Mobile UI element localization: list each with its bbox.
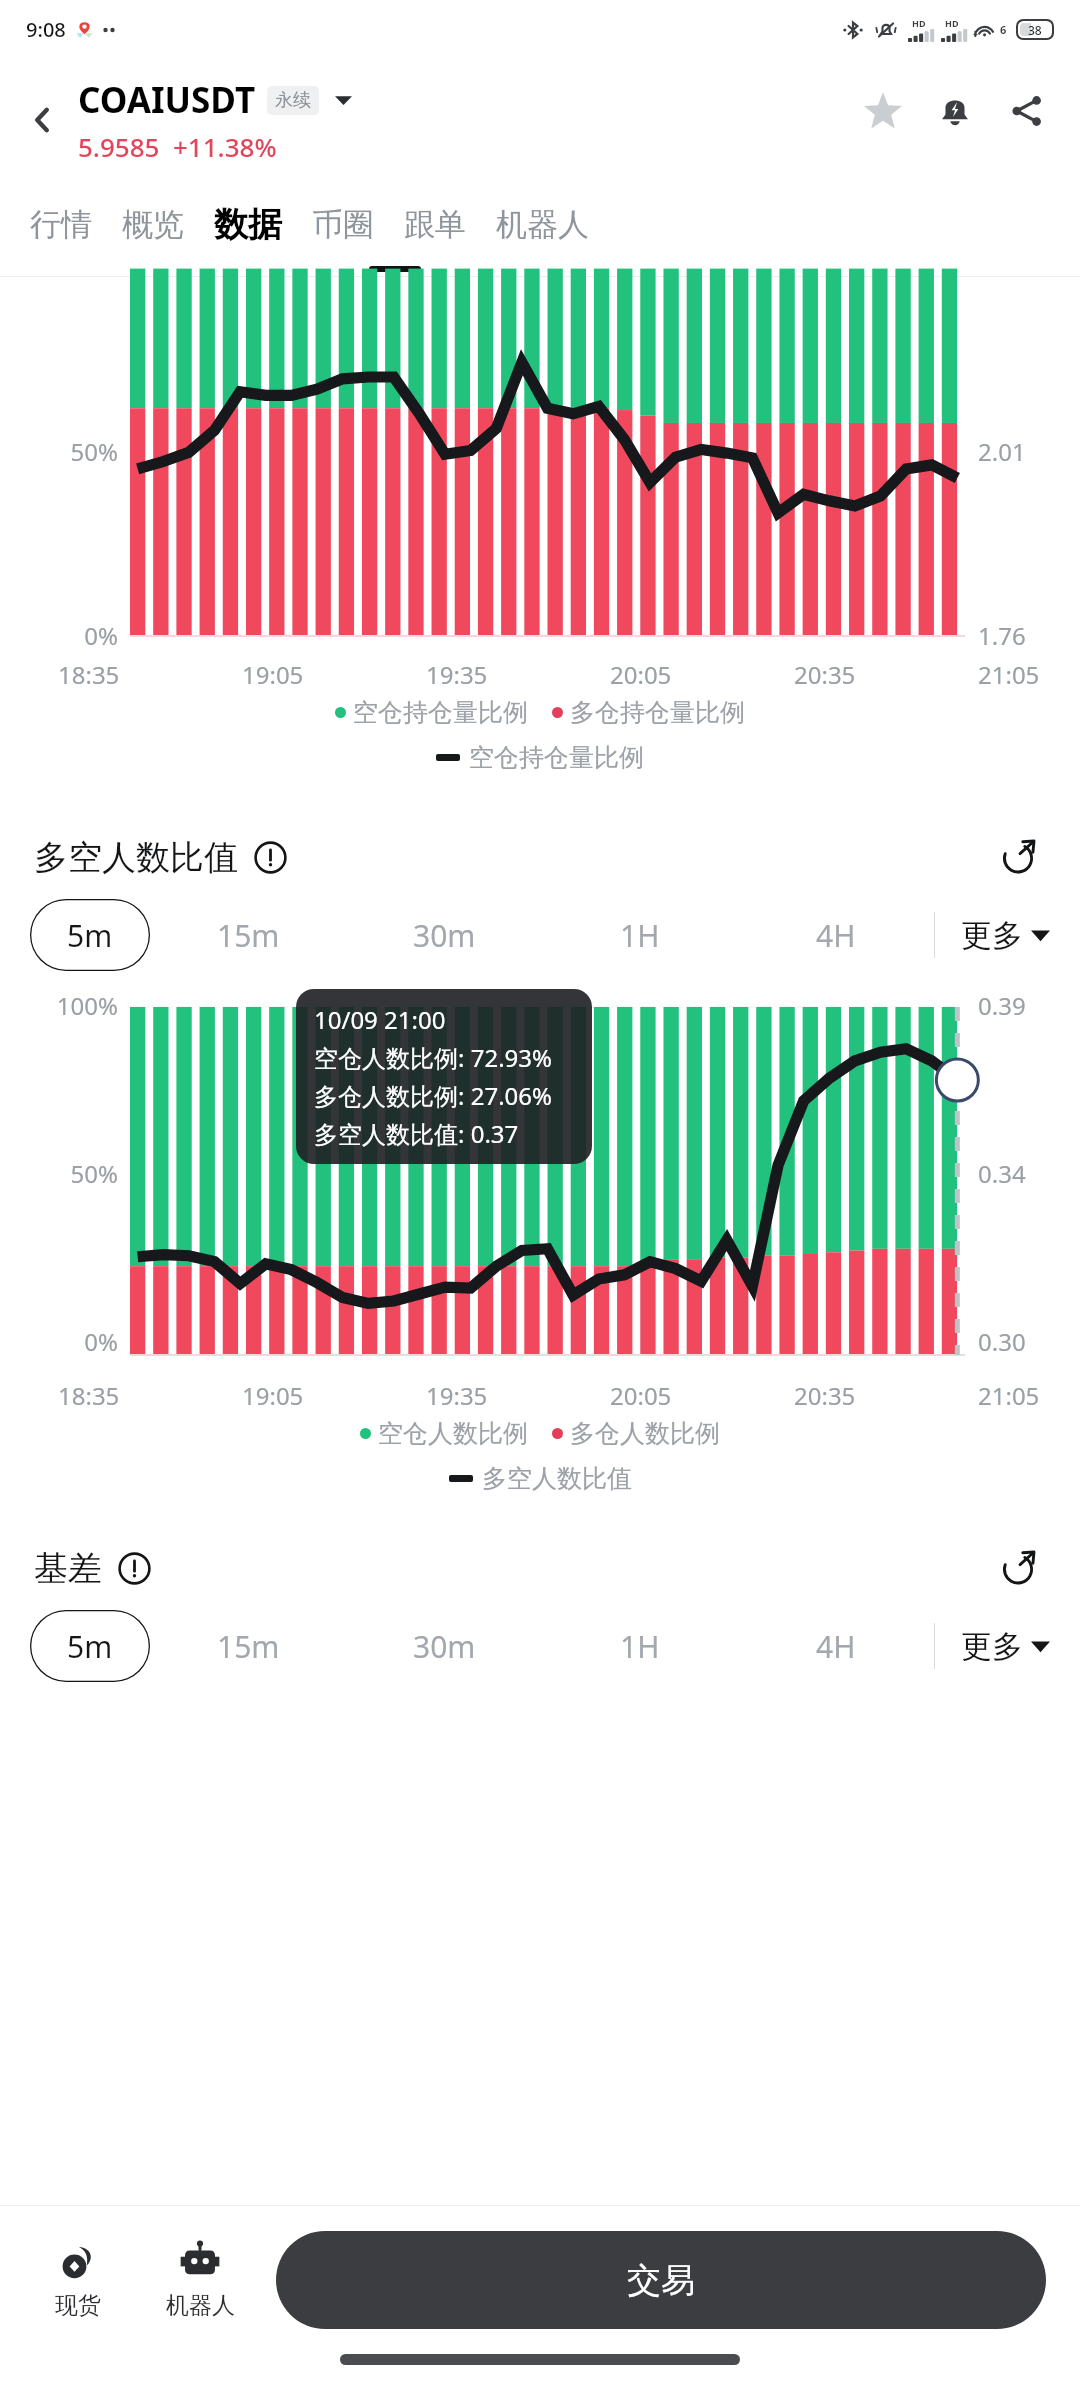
button[interactable]: 币圈	[312, 199, 374, 250]
button[interactable]: 1H	[542, 1610, 738, 1682]
staticText: 19:35	[426, 658, 488, 691]
button[interactable]: 数据	[214, 197, 282, 252]
button[interactable]: 跟单	[404, 199, 466, 250]
staticText: HD	[945, 17, 959, 29]
staticText: 15m	[217, 915, 280, 956]
button[interactable]: 概览	[122, 199, 184, 250]
staticText: 5m	[67, 1626, 113, 1667]
staticText: 多仓人数比例: 27.06%	[314, 1079, 552, 1112]
button[interactable]: 30m	[346, 899, 542, 971]
button[interactable]: 1H	[542, 899, 738, 971]
button[interactable]: 5m	[30, 1610, 150, 1682]
staticText: 100%	[0, 989, 118, 1022]
button[interactable]: Info	[250, 837, 290, 877]
button[interactable]: Info	[114, 1548, 154, 1588]
staticText: 20:35	[794, 1379, 856, 1412]
staticText: 交易	[627, 2259, 695, 2302]
staticText: 0.30	[978, 1325, 1026, 1358]
button[interactable]: 行情	[30, 199, 92, 250]
button[interactable]: Back	[10, 88, 74, 152]
staticText: 概览	[122, 205, 184, 244]
staticText: 10/09 21:00	[314, 1003, 446, 1036]
button[interactable]: 更多	[935, 916, 1050, 955]
staticText: 4H	[816, 1626, 856, 1667]
button[interactable]: Alerts	[924, 80, 986, 142]
staticText: 19:05	[242, 1379, 304, 1412]
staticText: 空仓人数比例: 72.93%	[314, 1041, 552, 1074]
staticText: 多仓持仓量比例	[570, 697, 745, 728]
button[interactable]: 4H	[738, 1610, 934, 1682]
staticText: 多空人数比值	[34, 836, 238, 879]
staticText: 现货	[55, 2291, 101, 2320]
button[interactable]: 15m	[150, 899, 346, 971]
staticText: 18:35	[58, 1379, 120, 1412]
staticText: 30m	[413, 915, 476, 956]
staticText: 20:05	[610, 658, 672, 691]
staticText: 9:08	[26, 16, 66, 43]
staticText: 机器人	[166, 2291, 235, 2320]
staticText: 21:05	[978, 1379, 1040, 1412]
staticText: 19:35	[426, 1379, 488, 1412]
button[interactable]: 4H	[738, 899, 934, 971]
staticText: 行情	[30, 205, 92, 244]
staticText: 2.01	[978, 435, 1026, 468]
staticText: 多空人数比值: 0.37	[314, 1117, 519, 1150]
staticText: 5.9585 +11.38%	[78, 129, 277, 164]
staticText: 永续	[275, 89, 311, 112]
staticText: 0%	[0, 1325, 118, 1358]
button[interactable]: 机器人	[152, 2240, 248, 2320]
button[interactable]: Expand chart	[990, 829, 1046, 885]
staticText: 6	[1000, 22, 1007, 37]
staticText: 多仓人数比例	[570, 1418, 720, 1449]
staticText: 0%	[0, 619, 118, 652]
staticText: 21:05	[978, 658, 1040, 691]
staticText: HD	[912, 17, 926, 29]
staticText: 多空人数比值	[482, 1463, 632, 1494]
staticText: 币圈	[312, 205, 374, 244]
staticText: 38	[1028, 22, 1042, 38]
staticText: 数据	[214, 203, 282, 246]
button[interactable]: Share	[996, 80, 1058, 142]
staticText: 机器人	[496, 205, 589, 244]
staticText: 更多	[961, 916, 1023, 955]
staticText: 1.76	[978, 619, 1026, 652]
button[interactable]: Expand chart	[990, 1540, 1046, 1596]
staticText: 15m	[217, 1626, 280, 1667]
staticText: 更多	[961, 1627, 1023, 1666]
staticText: 20:05	[610, 1379, 672, 1412]
button[interactable]: Select contract	[329, 86, 357, 114]
staticText: COAIUSDT	[78, 76, 256, 124]
button[interactable]: 交易	[276, 2231, 1046, 2329]
button[interactable]: 现货	[30, 2240, 126, 2320]
button[interactable]: 15m	[150, 1610, 346, 1682]
staticText: 20:35	[794, 658, 856, 691]
staticText: 基差	[34, 1547, 102, 1590]
staticText: 19:05	[242, 658, 304, 691]
staticText: 1H	[620, 1626, 660, 1667]
button[interactable]: 5m	[30, 899, 150, 971]
staticText: 空仓人数比例	[378, 1418, 528, 1449]
staticText: 空仓持仓量比例	[469, 742, 644, 773]
staticText: 50%	[0, 435, 118, 468]
button[interactable]: Favorite	[852, 80, 914, 142]
staticText: 1H	[620, 915, 660, 956]
staticText: 5m	[67, 915, 113, 956]
staticText: 0.39	[978, 989, 1026, 1022]
staticText: 18:35	[58, 658, 120, 691]
staticText: 4H	[816, 915, 856, 956]
staticText: 30m	[413, 1626, 476, 1667]
staticText: 0.34	[978, 1157, 1026, 1190]
staticText: 跟单	[404, 205, 466, 244]
button[interactable]: 30m	[346, 1610, 542, 1682]
button[interactable]: 机器人	[496, 199, 589, 250]
button[interactable]: 更多	[935, 1627, 1050, 1666]
staticText: 50%	[0, 1157, 118, 1190]
staticText: 空仓持仓量比例	[353, 697, 528, 728]
